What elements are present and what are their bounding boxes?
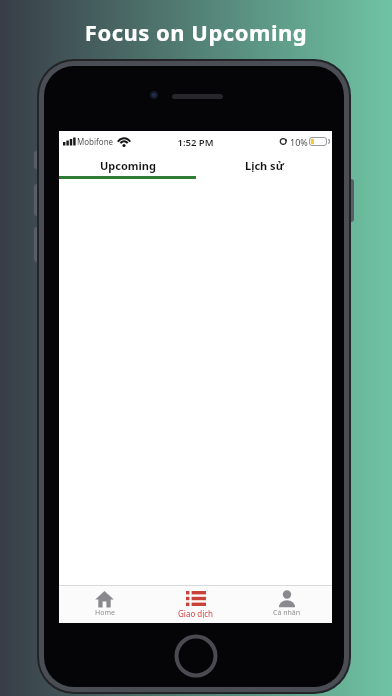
staticText: 1:52 PM: [59, 136, 332, 149]
staticText: Mobifone: [77, 136, 114, 147]
staticText: Lịch sử: [245, 158, 284, 173]
button[interactable]: Upcoming: [59, 154, 196, 176]
staticText: 10%: [290, 136, 308, 148]
button[interactable]: Cá nhân: [241, 586, 332, 623]
button[interactable]: Giao dịch: [150, 586, 241, 623]
button[interactable]: Home: [59, 586, 150, 623]
button[interactable]: Lịch sử: [196, 154, 333, 176]
staticText: Upcoming: [100, 158, 156, 173]
staticText: Home: [95, 608, 115, 618]
staticText: Focus on Upcoming: [0, 17, 392, 47]
staticText: Cá nhân: [273, 608, 301, 618]
staticText: Giao dịch: [178, 608, 214, 619]
